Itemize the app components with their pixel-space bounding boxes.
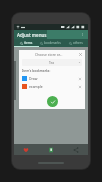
- staticText: example: [29, 84, 43, 89]
- button[interactable]: Bookmarks: [38, 144, 63, 155]
- staticText: others: [73, 41, 83, 45]
- staticText: Item's bookmarks:: [22, 69, 51, 73]
- staticText: Draw: [29, 76, 38, 81]
- staticText: Adjust menus: [17, 32, 47, 38]
- button[interactable]: More options: [79, 31, 86, 38]
- staticText: bookmarks: [44, 41, 61, 45]
- button[interactable]: bookmarks: [38, 39, 63, 47]
- button[interactable]: example: [19, 83, 85, 90]
- button[interactable]: items: [14, 39, 38, 47]
- button[interactable]: Remove: [78, 77, 82, 81]
- button[interactable]: Draw: [19, 75, 85, 82]
- staticText: items: [24, 41, 33, 45]
- staticText: Tea: [49, 61, 55, 65]
- button[interactable]: others: [63, 39, 88, 47]
- button[interactable]: Tea: [22, 59, 82, 66]
- button[interactable]: Confirm: [47, 96, 58, 107]
- button[interactable]: Share: [63, 144, 88, 155]
- button[interactable]: Remove: [78, 52, 83, 57]
- staticText: Choose store or...: [35, 52, 63, 57]
- button[interactable]: Favorite: [14, 144, 38, 155]
- button[interactable]: Remove: [78, 85, 82, 89]
